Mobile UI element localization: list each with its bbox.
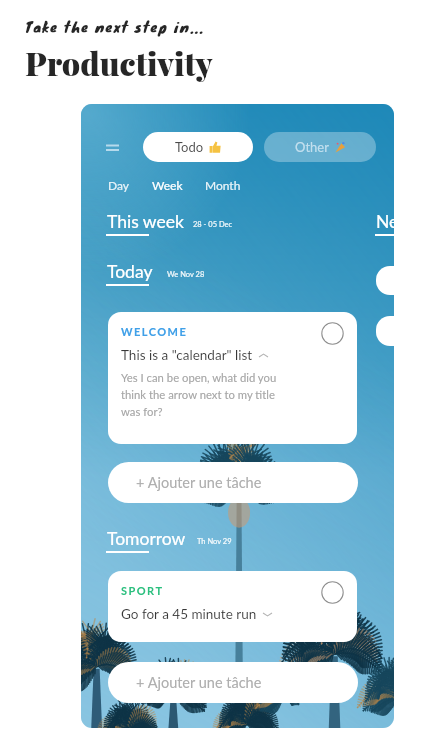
- staticText: Go for a 45 minute run: [121, 606, 257, 622]
- button[interactable]: + Ajouter une tâche: [108, 662, 358, 703]
- staticText: Todo: [175, 139, 204, 155]
- staticText: This is a "calendar" list: [121, 347, 253, 363]
- staticText: Next week: [376, 211, 394, 232]
- staticText: + Ajouter une tâche: [136, 674, 262, 691]
- button[interactable]: WELCOME: [108, 312, 357, 444]
- staticText: Yes I can be open, what did you think th…: [121, 371, 277, 419]
- staticText: Tomorrow: [107, 528, 186, 549]
- button[interactable]: Complete task: [321, 581, 344, 604]
- button[interactable]: Next week: [376, 211, 394, 236]
- staticText: Month: [205, 178, 241, 192]
- button[interactable]: Month: [205, 178, 241, 192]
- button[interactable]: Complete task: [321, 322, 344, 345]
- staticText: + Ajouter une tâche: [136, 474, 262, 491]
- staticText: Th Nov 29: [197, 537, 232, 546]
- button[interactable]: [376, 266, 394, 295]
- staticText: Take the next step in...: [25, 16, 205, 38]
- staticText: Other: [295, 139, 329, 155]
- button[interactable]: SPORT: [108, 571, 357, 642]
- button[interactable]: Other: [264, 132, 376, 162]
- button[interactable]: This week: [107, 211, 184, 236]
- button[interactable]: Today: [107, 261, 153, 286]
- staticText: Today: [107, 261, 153, 282]
- button[interactable]: Todo: [143, 132, 253, 162]
- staticText: WELCOME: [121, 325, 188, 338]
- staticText: SPORT: [121, 584, 164, 597]
- button[interactable]: Day: [108, 178, 129, 192]
- button[interactable]: Menu: [102, 137, 126, 159]
- button[interactable]: + Ajouter une tâche: [108, 462, 358, 503]
- button[interactable]: [376, 316, 394, 346]
- staticText: This week: [107, 211, 184, 232]
- button[interactable]: Week: [152, 178, 183, 192]
- button[interactable]: Tomorrow: [107, 528, 186, 553]
- staticText: Week: [152, 178, 183, 192]
- staticText: 28 - 05 Dec: [193, 220, 233, 229]
- staticText: Productivity: [25, 41, 213, 84]
- staticText: Day: [108, 178, 129, 192]
- staticText: We Nov 28: [167, 270, 205, 279]
